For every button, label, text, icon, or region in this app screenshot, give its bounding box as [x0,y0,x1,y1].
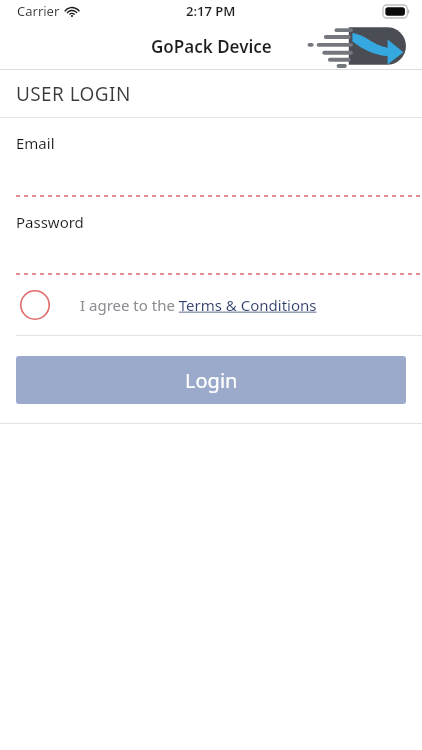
button[interactable]: I agree to the Terms & Conditions [0,275,422,335]
staticText: I agree to the Terms & Conditions [80,295,317,315]
staticText: Email [16,133,55,153]
other: GoPack logo [306,23,408,69]
button[interactable]: Password [0,197,422,273]
staticText: Password [16,212,84,232]
staticText: Login [185,367,238,394]
staticText: Carrier [17,2,60,20]
staticText: GoPack Device [151,35,272,58]
button[interactable]: Email [0,118,422,195]
staticText: USER LOGIN [16,81,131,107]
staticText: 2:17 PM [186,2,236,20]
button[interactable]: Login [16,356,406,404]
